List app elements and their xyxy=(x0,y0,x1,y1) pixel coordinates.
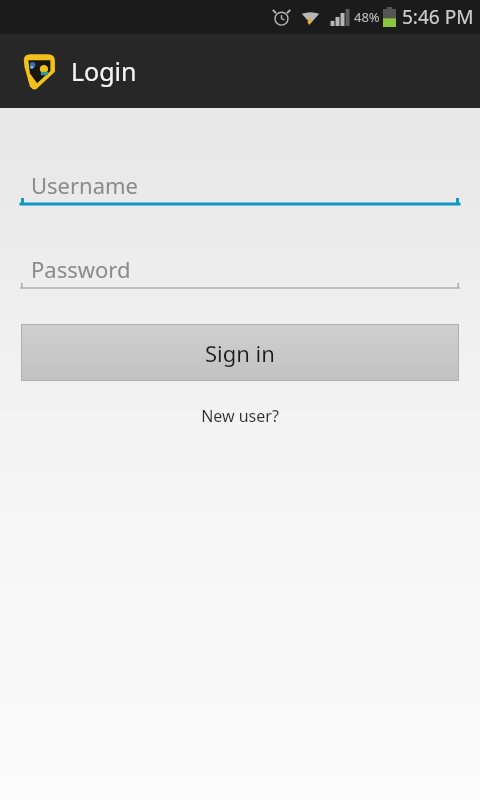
button[interactable]: Username xyxy=(21,170,459,206)
staticText: Password xyxy=(31,254,131,284)
button[interactable]: New user? xyxy=(0,405,480,427)
button[interactable]: Password xyxy=(21,254,459,290)
staticText: Username xyxy=(31,170,139,200)
staticText: Login xyxy=(71,54,137,88)
staticText: 5:46 PM xyxy=(402,4,474,30)
button[interactable]: Sign in xyxy=(22,325,458,380)
staticText: 48% xyxy=(354,8,380,26)
staticText: Sign in xyxy=(205,338,275,368)
staticText: New user? xyxy=(201,405,279,427)
